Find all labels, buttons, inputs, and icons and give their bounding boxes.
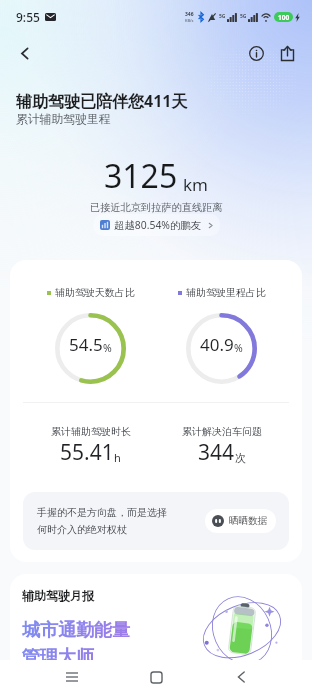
staticText: % <box>234 341 243 355</box>
button[interactable]: Back <box>9 38 39 68</box>
staticText: 54.5 <box>69 333 103 356</box>
staticText: 晒晒数据 <box>229 515 268 527</box>
staticText: 9:55 <box>16 9 40 25</box>
staticText: 100 <box>278 13 290 22</box>
staticText: % <box>103 341 112 355</box>
staticText: 辅助驾驶里程占比 <box>186 286 266 299</box>
staticText: 已接近北京到拉萨的直线距离 <box>90 201 223 214</box>
button[interactable]: Home <box>143 664 169 690</box>
button[interactable]: Back <box>228 664 254 690</box>
staticText: 累计辅助驾驶时长 <box>51 425 131 438</box>
staticText: 5G <box>240 13 247 20</box>
staticText: h <box>114 450 121 465</box>
button[interactable]: 晒晒数据 <box>205 509 276 533</box>
button[interactable]: 超越80.54%的鹏友 <box>93 214 220 236</box>
staticText: 城市通勤能量 管理大师 <box>22 619 130 669</box>
staticText: KB/s <box>185 18 194 23</box>
staticText: 辅助驾驶天数占比 <box>55 286 135 299</box>
staticText: 346 <box>185 11 194 18</box>
staticText: km <box>183 173 208 196</box>
button[interactable]: Info <box>242 39 270 67</box>
staticText: 手握的不是方向盘，而是选择 何时介入的绝对权杖 <box>37 506 167 536</box>
staticText: 55.41 <box>60 438 114 467</box>
button[interactable]: Share <box>273 39 301 67</box>
button[interactable]: Recents <box>59 664 85 690</box>
staticText: 40.9 <box>200 333 234 356</box>
staticText: 辅助驾驶已陪伴您411天 <box>16 90 188 112</box>
button[interactable]: 辅助驾驶月报 <box>10 574 302 693</box>
staticText: 辅助驾驶月报 <box>22 588 94 603</box>
staticText: 次 <box>235 451 246 465</box>
staticText: 累计辅助驾驶里程 <box>16 112 111 127</box>
staticText: 累计解决泊车问题 <box>182 425 262 438</box>
staticText: 超越80.54%的鹏友 <box>114 218 202 232</box>
staticText: 344 <box>198 438 235 467</box>
staticText: 3125 <box>104 154 178 198</box>
staticText: 5G <box>219 13 226 20</box>
